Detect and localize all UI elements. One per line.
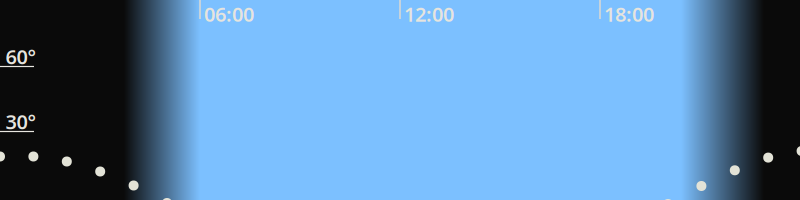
staticText: 18:00 (604, 1, 654, 27)
staticText: 06:00 (204, 1, 254, 27)
staticText: 12:00 (404, 1, 454, 27)
staticText: 30° (5, 108, 36, 135)
button[interactable]: Hourly temperature chart (0, 0, 800, 200)
staticText: 60° (5, 43, 36, 70)
